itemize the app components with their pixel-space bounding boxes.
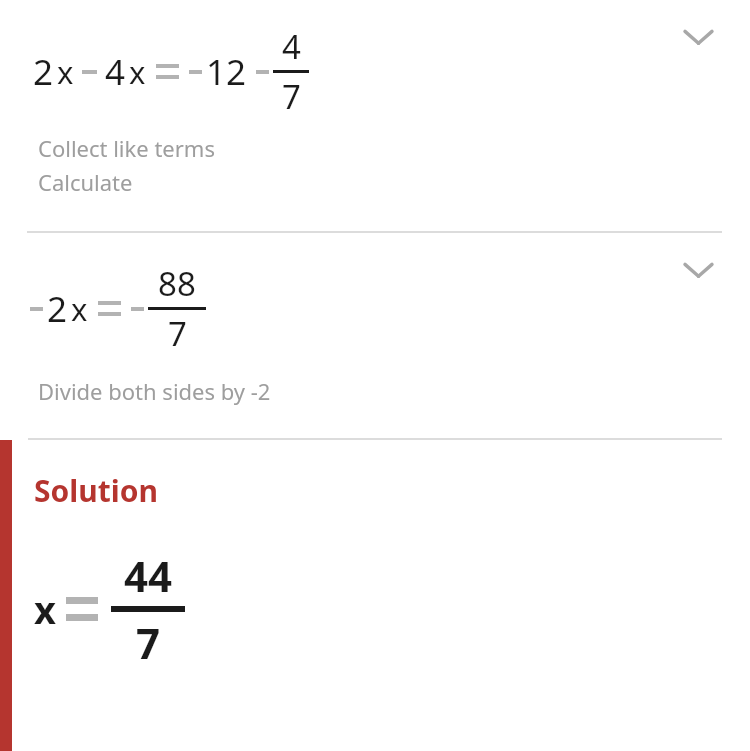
staticText: x [129, 51, 146, 93]
staticText: Divide both sides by -2 [38, 376, 271, 406]
staticText: 7 [282, 74, 301, 119]
staticText: Solution [34, 470, 158, 511]
staticText: 44 [124, 547, 173, 604]
staticText: 2 [47, 285, 68, 333]
staticText: Collect like terms [38, 133, 215, 163]
staticText: 12 [206, 48, 247, 96]
staticText: x [57, 51, 74, 93]
staticText: x [71, 288, 88, 330]
staticText: 2 [33, 48, 54, 96]
staticText: 88 [158, 261, 196, 306]
staticText: 7 [168, 311, 187, 356]
button[interactable]: 2 [0, 233, 750, 440]
button[interactable]: Expand step [672, 11, 724, 63]
staticText: 4 [105, 48, 126, 96]
staticText: Calculate [38, 167, 133, 197]
staticText: 7 [136, 614, 161, 671]
staticText: x [34, 583, 56, 635]
button[interactable]: Expand step [672, 244, 724, 296]
staticText: 4 [282, 24, 301, 69]
button[interactable]: 2 [0, 0, 750, 233]
